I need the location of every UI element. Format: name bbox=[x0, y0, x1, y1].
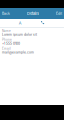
staticText: Lorem ipsum dolor sit bbox=[2, 33, 37, 36]
staticText: Email bbox=[2, 47, 11, 50]
staticText: Back bbox=[2, 11, 10, 16]
staticText: Edit bbox=[56, 11, 62, 16]
button[interactable]: Back bbox=[0, 11, 10, 16]
staticText: Name bbox=[2, 29, 11, 33]
staticText: +1 555 0100 bbox=[2, 42, 20, 45]
staticText: Details bbox=[27, 11, 39, 16]
button[interactable]: Edit bbox=[56, 11, 64, 16]
staticText: Phone bbox=[2, 38, 12, 41]
staticText: A bbox=[19, 21, 22, 25]
staticText: mail@example.com bbox=[2, 50, 34, 54]
